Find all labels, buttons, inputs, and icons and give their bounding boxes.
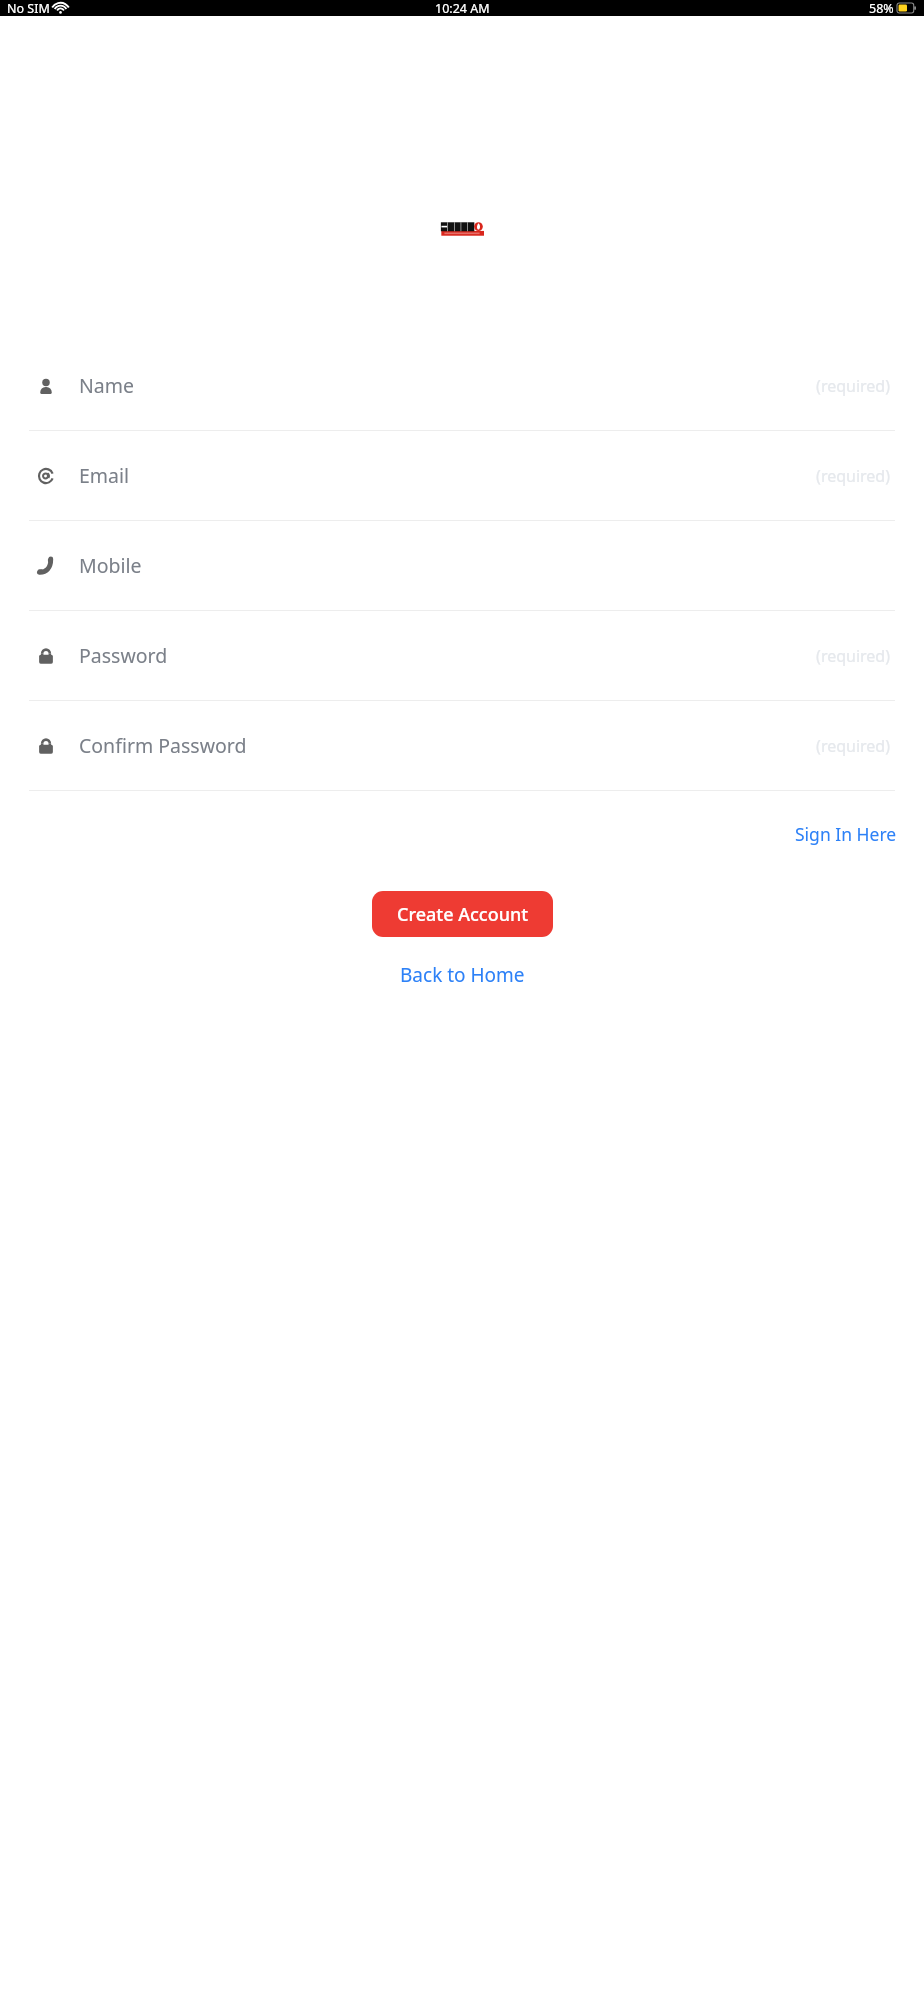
staticText: 58% [869,0,894,16]
staticText: Name [79,372,816,399]
staticText: Sign In Here [795,822,897,846]
staticText: (required) [816,375,890,397]
staticText: (required) [816,735,890,757]
other: Email [38,468,54,484]
button[interactable]: Password [0,611,924,701]
staticText: No SIM [7,0,50,16]
staticText: Mobile [79,552,890,579]
other: Mobile [38,558,54,574]
other: Password [38,648,54,664]
staticText: Password [79,642,816,669]
staticText: Create Account [397,902,529,927]
other: Name [38,378,54,394]
button[interactable]: Back to Home [390,956,535,994]
button[interactable]: Password [0,701,924,791]
staticText: 10:24 AM [435,0,490,16]
staticText: (required) [816,645,890,667]
button[interactable]: Sign In Here [789,816,903,852]
staticText: Confirm Password [79,732,816,759]
button[interactable]: Mobile [0,521,924,611]
button[interactable]: Email [0,431,924,521]
staticText: (required) [816,465,890,487]
button[interactable]: Name [0,341,924,431]
staticText: Back to Home [400,962,525,988]
button[interactable]: Create Account [372,891,553,937]
staticText: Email [79,462,816,489]
other: Password [38,738,54,754]
